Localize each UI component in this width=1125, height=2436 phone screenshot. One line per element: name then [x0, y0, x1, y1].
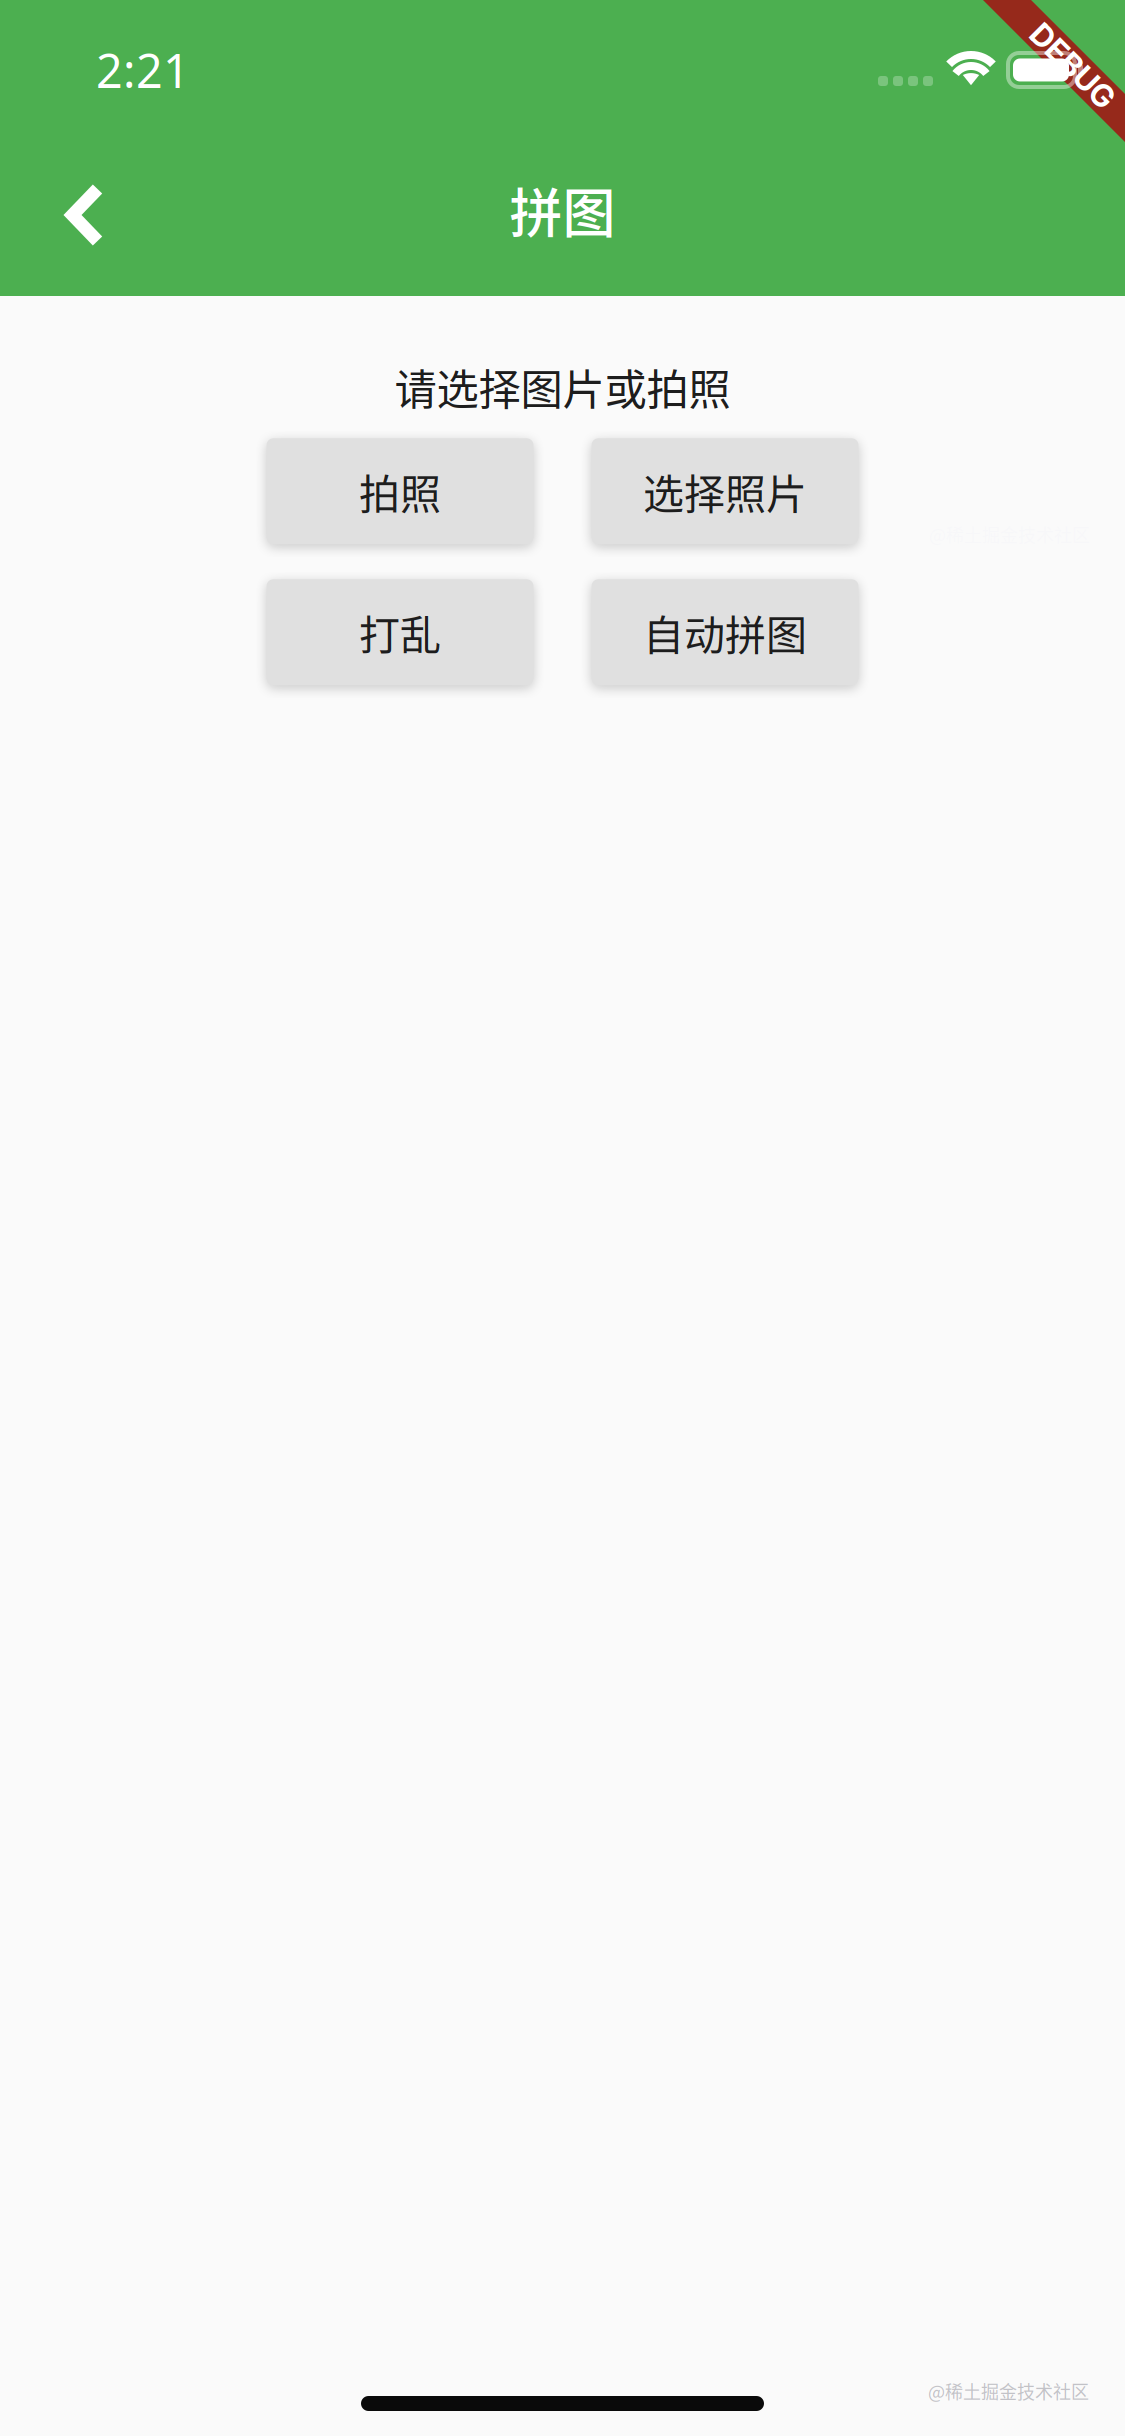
staticText: 拍照	[359, 462, 441, 521]
staticText: DEBUG	[1025, 34, 1125, 72]
staticText: 打乱	[359, 603, 441, 662]
staticText: @稀土掘金技术社区	[928, 2378, 1089, 2404]
staticText: 自动拼图	[643, 603, 807, 662]
button[interactable]: 打乱	[266, 579, 533, 685]
staticText: 请选择图片或拍照	[394, 356, 730, 417]
button[interactable]: Back	[0, 131, 170, 289]
staticText: 2:21	[96, 39, 190, 101]
button[interactable]: 拍照	[266, 438, 533, 544]
staticText: 拼图	[509, 172, 615, 248]
button[interactable]: 自动拼图	[591, 579, 858, 685]
staticText: 选择照片	[643, 462, 807, 521]
button[interactable]: 选择照片	[591, 438, 858, 544]
